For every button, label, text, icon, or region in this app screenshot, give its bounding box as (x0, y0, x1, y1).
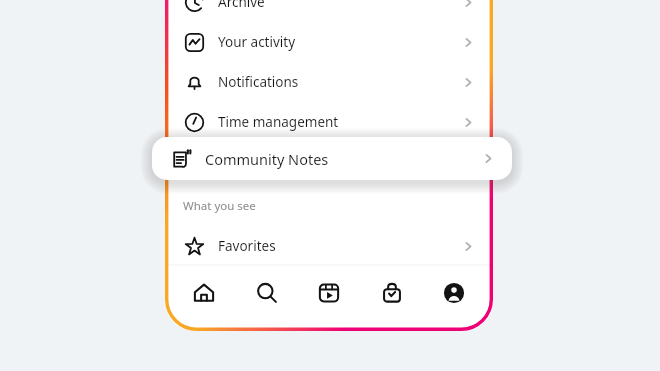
staticText: Favorites (218, 237, 276, 255)
button[interactable]: Home (185, 274, 223, 312)
button[interactable]: Muted accounts (165, 266, 493, 306)
staticText: Archive (218, 0, 265, 11)
button[interactable]: Community Notes (152, 137, 512, 180)
staticText: Muted accounts (218, 277, 320, 295)
staticText: What you see (183, 198, 256, 214)
staticText: Your activity (218, 33, 296, 51)
staticText: Community Notes (205, 149, 329, 169)
button[interactable]: Favorites (165, 226, 493, 266)
button[interactable]: Archive (165, 0, 493, 22)
button[interactable]: Reels (310, 274, 348, 312)
staticText: Notifications (218, 73, 299, 91)
button[interactable]: Search (248, 274, 286, 312)
staticText: Time management (218, 113, 339, 131)
button[interactable]: Your activity (165, 22, 493, 62)
button[interactable]: Time management (165, 102, 493, 142)
button[interactable]: Notifications (165, 62, 493, 102)
button[interactable]: Shop (373, 274, 411, 312)
button[interactable]: Profile (435, 274, 473, 312)
button[interactable] (165, 142, 493, 182)
